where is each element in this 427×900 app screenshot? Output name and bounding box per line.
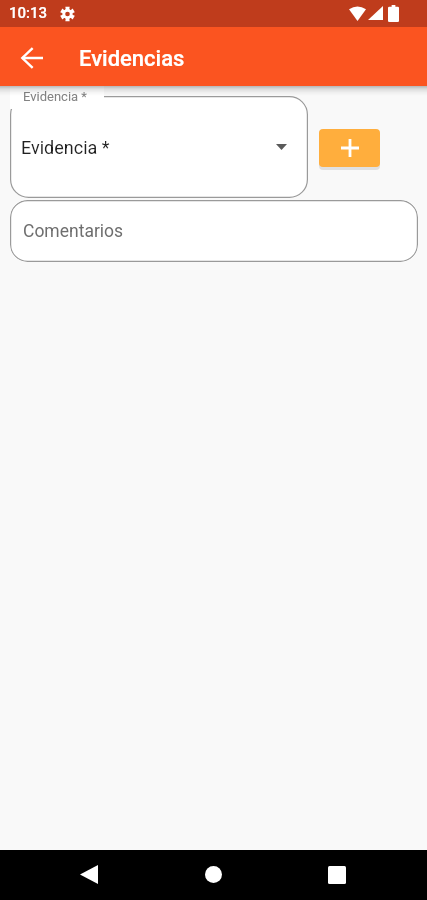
- staticText: Evidencia *: [23, 89, 87, 104]
- staticText: 10:13: [9, 4, 48, 22]
- staticText: Evidencias: [79, 46, 185, 72]
- staticText: Evidencia *: [21, 137, 110, 158]
- button[interactable]: Back: [64, 850, 113, 899]
- button[interactable]: Recent apps: [312, 850, 361, 899]
- button[interactable]: Home: [189, 850, 238, 899]
- button[interactable]: Agregar evidencia: [319, 129, 380, 167]
- button[interactable]: Evidencia *: [10, 86, 308, 198]
- button[interactable]: Comentarios: [10, 200, 418, 262]
- button[interactable]: Back: [10, 35, 54, 79]
- staticText: Comentarios: [23, 221, 124, 242]
